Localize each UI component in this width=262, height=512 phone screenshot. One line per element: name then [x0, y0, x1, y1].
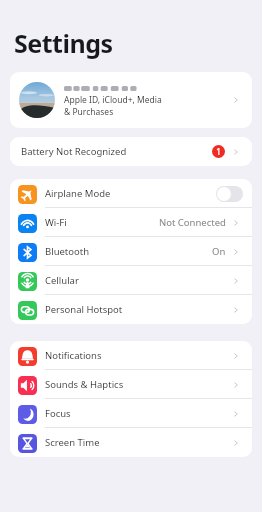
button[interactable]: Notifications: [10, 341, 252, 370]
staticText: 1: [216, 146, 221, 157]
staticText: Airplane Mode: [45, 187, 216, 200]
button[interactable]: Wi-Fi: [10, 208, 252, 237]
button[interactable]: Personal Hotspot: [10, 295, 252, 324]
staticText: Notifications: [45, 349, 231, 362]
staticText: Personal Hotspot: [45, 303, 231, 316]
staticText: & Purchases: [64, 106, 114, 118]
staticText: Bluetooth: [45, 245, 212, 258]
staticText: Battery Not Recognized: [21, 145, 212, 158]
staticText: Sounds & Haptics: [45, 378, 231, 391]
staticText: Apple ID, iCloud+, Media: [64, 94, 162, 106]
button[interactable]: Airplane Mode: [10, 179, 252, 208]
button[interactable]: Battery Not Recognized: [10, 137, 252, 166]
staticText: Screen Time: [45, 436, 231, 449]
button[interactable]: Cellular: [10, 266, 252, 295]
staticText: Cellular: [45, 274, 231, 287]
staticText: Settings: [14, 26, 113, 60]
staticText: Focus: [45, 407, 231, 420]
button[interactable]: Bluetooth: [10, 237, 252, 266]
staticText: Wi-Fi: [45, 216, 159, 229]
button[interactable]: Sounds & Haptics: [10, 370, 252, 399]
button[interactable]: Focus: [10, 399, 252, 428]
button[interactable]: Apple ID, iCloud+, Media: [10, 72, 252, 128]
staticText: Not Connected: [159, 216, 226, 229]
button[interactable]: Airplane Mode toggle: [216, 186, 243, 202]
button[interactable]: Screen Time: [10, 428, 252, 457]
staticText: On: [212, 245, 226, 258]
